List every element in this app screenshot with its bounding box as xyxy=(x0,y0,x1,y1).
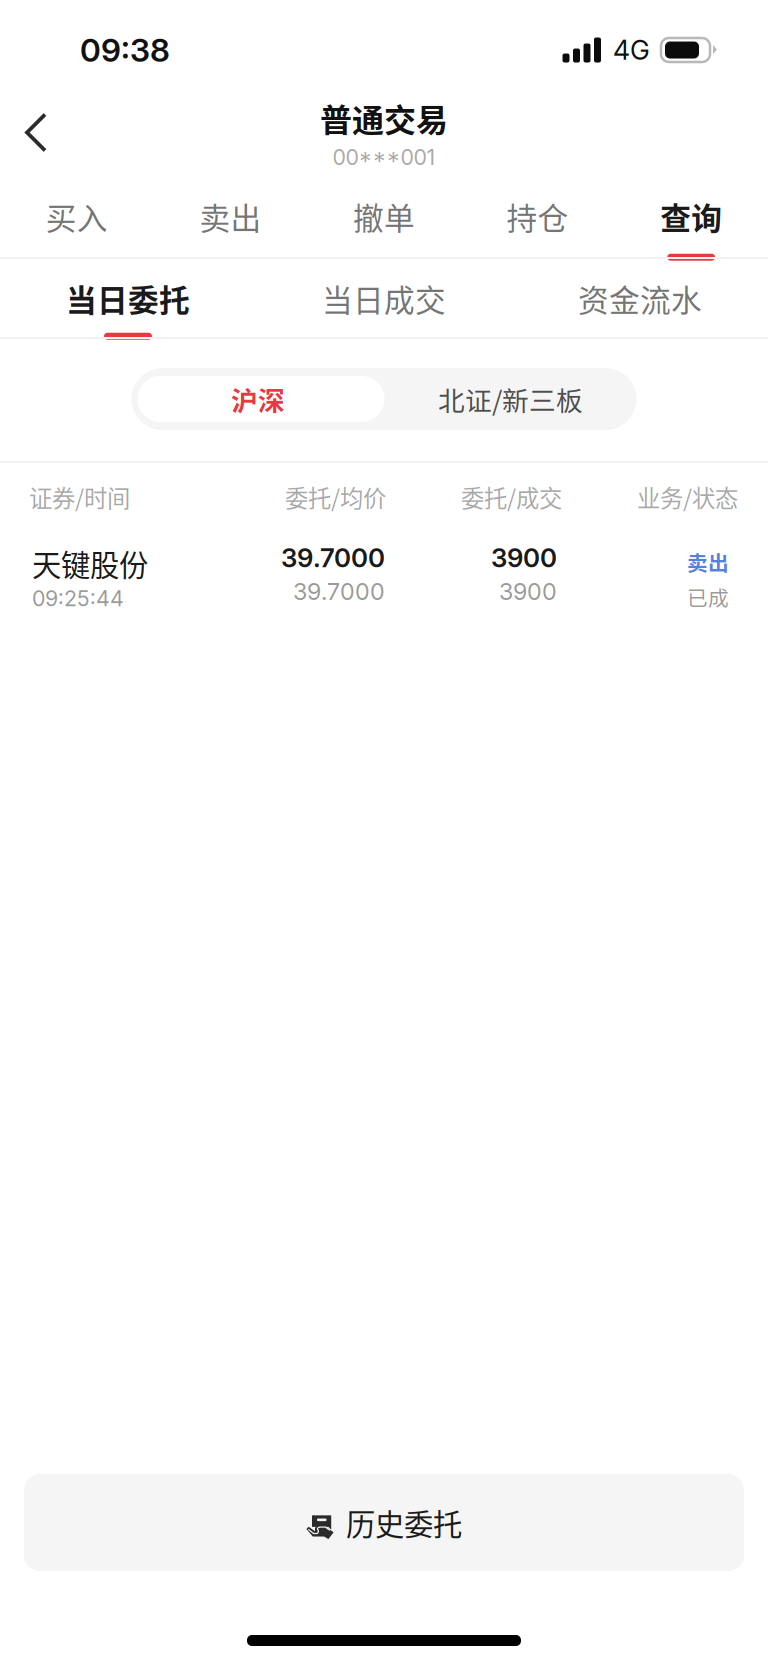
staticText: 普通交易 xyxy=(320,95,448,141)
button[interactable]: 买入 xyxy=(0,180,154,257)
button[interactable]: 北证/新三板 xyxy=(384,368,636,430)
button[interactable]: 查询 xyxy=(614,180,768,257)
button[interactable]: 天键股份 xyxy=(0,531,768,612)
staticText: 撤单 xyxy=(353,194,415,239)
staticText: 4G xyxy=(613,34,650,66)
button[interactable]: 卖出 xyxy=(154,180,307,257)
staticText: 09:25:44 xyxy=(32,585,124,611)
staticText: 已成 xyxy=(687,582,729,612)
staticText: 3900 xyxy=(491,542,557,573)
staticText: 沪深 xyxy=(231,380,285,418)
staticText: 查询 xyxy=(660,194,722,239)
staticText: 北证/新三板 xyxy=(438,380,583,418)
staticText: 卖出 xyxy=(199,194,261,239)
button[interactable]: 历史委托 xyxy=(24,1474,744,1571)
staticText: 3900 xyxy=(499,577,557,606)
staticText: 委托/均价 xyxy=(285,480,386,514)
staticText: 买入 xyxy=(46,194,108,239)
staticText: 历史委托 xyxy=(346,1501,462,1544)
staticText: 当日成交 xyxy=(322,276,446,321)
button[interactable]: 撤单 xyxy=(307,180,461,257)
staticText: 09:38 xyxy=(80,31,170,69)
staticText: 当日委托 xyxy=(66,276,190,321)
button[interactable]: 资金流水 xyxy=(512,259,768,337)
staticText: 卖出 xyxy=(687,547,729,577)
staticText: 证券/时间 xyxy=(29,480,130,514)
staticText: 39.7000 xyxy=(293,577,385,606)
button[interactable]: 返回 xyxy=(0,97,70,167)
staticText: 业务/状态 xyxy=(637,480,738,514)
staticText: 资金流水 xyxy=(578,276,702,321)
button[interactable]: 沪深 xyxy=(131,368,384,430)
staticText: 委托/成交 xyxy=(461,480,562,514)
staticText: 00***001 xyxy=(332,144,435,170)
button[interactable]: 当日成交 xyxy=(256,259,512,337)
button[interactable]: 当日委托 xyxy=(0,259,256,337)
staticText: 39.7000 xyxy=(281,542,385,573)
button[interactable]: 持仓 xyxy=(461,180,614,257)
staticText: 天键股份 xyxy=(32,542,148,584)
staticText: 持仓 xyxy=(507,194,569,239)
